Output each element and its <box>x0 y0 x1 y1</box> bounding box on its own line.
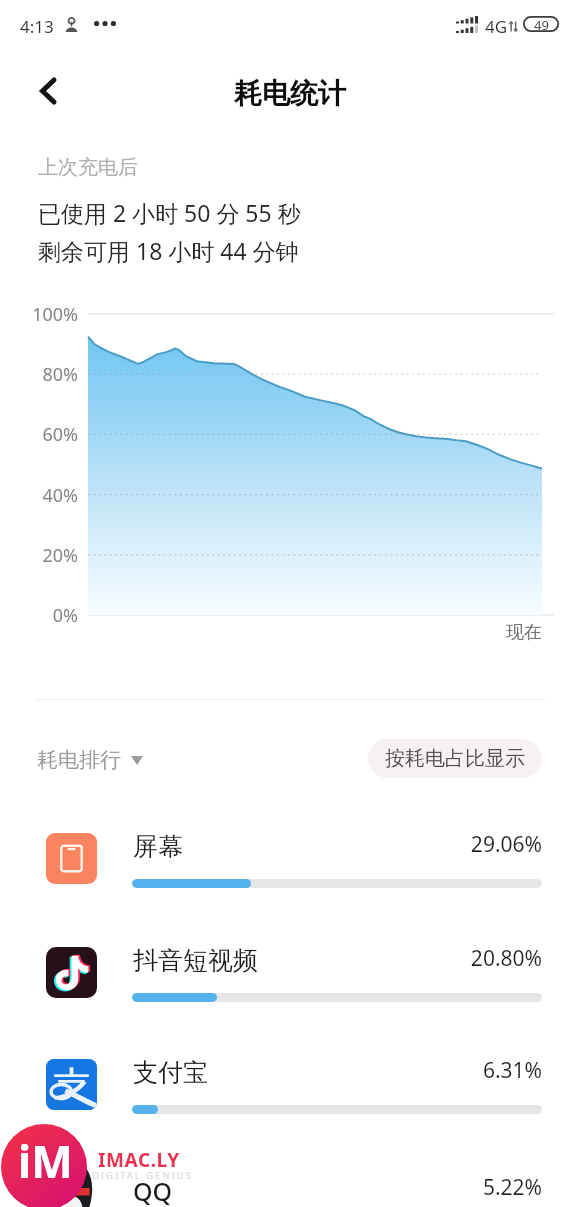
staticText: 0% <box>0 603 78 628</box>
button[interactable]: 耗电排行 <box>37 747 143 773</box>
button[interactable] <box>0 1035 580 1135</box>
staticText: 49 <box>534 16 549 32</box>
staticText: DIGITAL GENIUS <box>92 1169 193 1182</box>
staticText: 上次充电后 <box>38 155 138 180</box>
staticText: 支付宝 <box>133 1057 208 1088</box>
staticText: 4:13 <box>20 15 54 38</box>
button[interactable]: Back <box>24 67 72 115</box>
staticText: 抖音短视频 <box>133 945 258 976</box>
staticText: 100% <box>0 302 78 327</box>
button[interactable]: 按耗电占比显示 <box>368 739 542 778</box>
staticText: QQ <box>133 1174 173 1207</box>
staticText: 已使用 2 小时 50 分 55 秒 <box>38 197 301 228</box>
staticText: 现在 <box>506 621 542 644</box>
staticText: 4G <box>485 15 508 38</box>
button[interactable] <box>0 1152 580 1207</box>
staticText: 6.31% <box>342 1056 542 1085</box>
staticText: 耗电排行 <box>37 747 121 773</box>
staticText: 剩余可用 18 小时 44 分钟 <box>38 235 299 266</box>
staticText: iM <box>18 1131 73 1191</box>
staticText: 29.06% <box>342 830 542 859</box>
staticText: 80% <box>0 362 78 387</box>
staticText: 屏幕 <box>133 831 183 862</box>
staticText: 20% <box>0 543 78 568</box>
staticText: 60% <box>0 422 78 447</box>
button[interactable] <box>0 923 580 1023</box>
staticText: 20.80% <box>342 944 542 973</box>
staticText: 40% <box>0 483 78 508</box>
staticText: 按耗电占比显示 <box>385 746 525 771</box>
staticText: IMAC.LY <box>98 1147 180 1173</box>
button[interactable] <box>0 809 580 909</box>
staticText: 5.22% <box>342 1173 542 1202</box>
staticText: 耗电统计 <box>0 76 580 111</box>
